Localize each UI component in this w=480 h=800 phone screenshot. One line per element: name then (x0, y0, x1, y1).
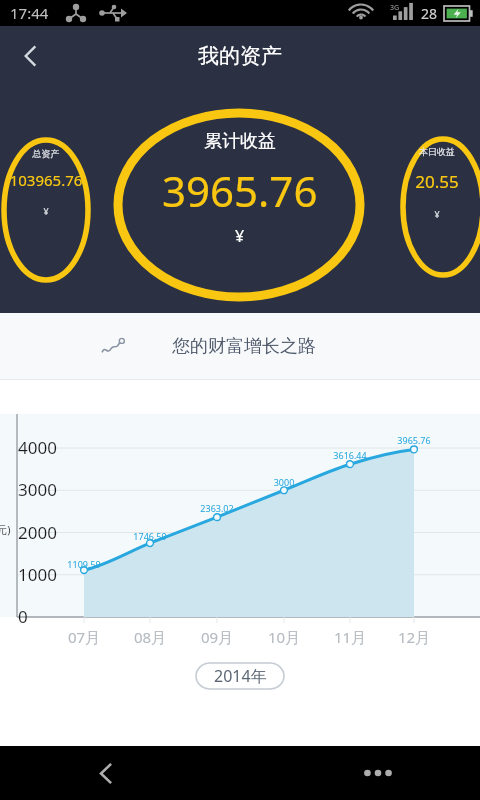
staticText: 11月 (320, 627, 380, 647)
staticText: 10月 (254, 627, 314, 647)
staticText: 累计收益 (204, 130, 276, 153)
button[interactable]: Back (0, 26, 62, 86)
staticText: 3965.76 (162, 162, 318, 219)
staticText: 本日收益 (397, 146, 477, 157)
staticText: 28 (421, 4, 438, 23)
staticText: 2014年 (214, 665, 267, 687)
staticText: (元) (0, 522, 11, 537)
staticText: 09月 (187, 627, 247, 647)
button[interactable]: 2014年 (195, 662, 285, 690)
staticText: 3616.44 (320, 449, 380, 461)
staticText: 103965.76 (4, 170, 88, 190)
staticText: 4000 (18, 436, 57, 459)
staticText: 我的资产 (198, 43, 282, 69)
button[interactable]: Back (82, 749, 130, 797)
staticText: 3000 (254, 476, 314, 488)
staticText: 您的财富增长之路 (172, 335, 316, 358)
staticText: ¥ (235, 225, 245, 247)
staticText: 12月 (384, 627, 444, 647)
button[interactable]: More options (348, 749, 408, 797)
staticText: 3965.76 (384, 434, 444, 446)
staticText: ¥ (397, 208, 477, 220)
staticText: 2000 (18, 521, 57, 544)
staticText: 1000 (18, 563, 57, 586)
staticText: 07月 (54, 627, 114, 647)
staticText: 3000 (18, 478, 57, 501)
staticText: 2363.02 (187, 502, 247, 514)
staticText: 1746.59 (120, 530, 180, 542)
staticText: 1109.59 (54, 558, 114, 570)
staticText: 17:44 (10, 3, 49, 23)
staticText: 20.55 (397, 170, 477, 193)
staticText: 0 (18, 605, 28, 628)
staticText: 总资产 (4, 148, 88, 159)
staticText: 08月 (120, 627, 180, 647)
staticText: 3G (390, 3, 400, 13)
staticText: ¥ (4, 205, 88, 217)
